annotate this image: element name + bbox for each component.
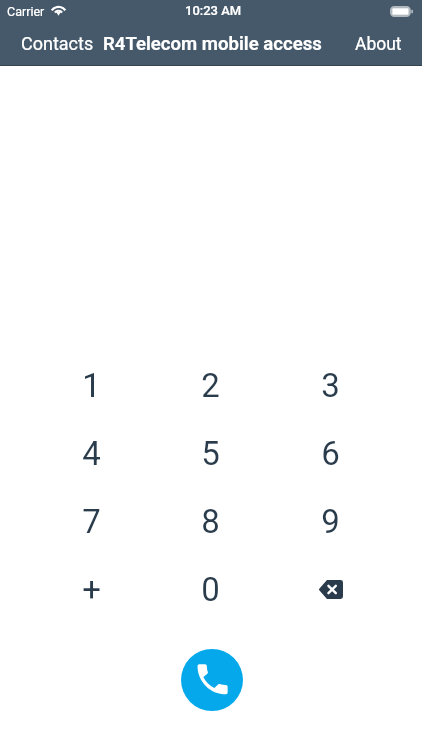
button[interactable]: Backspace — [271, 555, 390, 623]
staticText: 4 — [82, 434, 101, 473]
button[interactable]: 2 — [151, 351, 270, 419]
button[interactable]: 7 — [32, 487, 151, 555]
staticText: Contacts — [21, 33, 94, 54]
button[interactable]: Contacts — [0, 25, 104, 62]
button[interactable]: 6 — [271, 419, 390, 487]
button[interactable]: 3 — [271, 351, 390, 419]
staticText: About — [355, 34, 402, 55]
staticText: + — [82, 570, 101, 609]
button[interactable]: 4 — [32, 419, 151, 487]
button[interactable]: About — [345, 26, 422, 63]
staticText: 5 — [201, 434, 220, 473]
staticText: R4Telecom mobile access — [103, 33, 322, 55]
staticText: 9 — [321, 502, 340, 541]
button[interactable]: + — [32, 555, 151, 623]
staticText: 1 — [82, 366, 101, 405]
other: Backspace — [318, 580, 343, 599]
button[interactable]: 5 — [151, 419, 270, 487]
staticText: 8 — [201, 502, 220, 541]
staticText: 2 — [201, 366, 220, 405]
staticText: Carrier — [7, 4, 45, 19]
button[interactable]: 8 — [151, 487, 270, 555]
staticText: 0 — [201, 570, 220, 609]
staticText: 3 — [321, 366, 340, 405]
staticText: 10:23 AM — [185, 3, 242, 18]
button[interactable]: Call — [181, 649, 243, 711]
button[interactable]: 1 — [32, 351, 151, 419]
staticText: 6 — [321, 434, 340, 473]
button[interactable]: 9 — [271, 487, 390, 555]
staticText: 7 — [82, 502, 101, 541]
button[interactable]: 0 — [151, 555, 270, 623]
